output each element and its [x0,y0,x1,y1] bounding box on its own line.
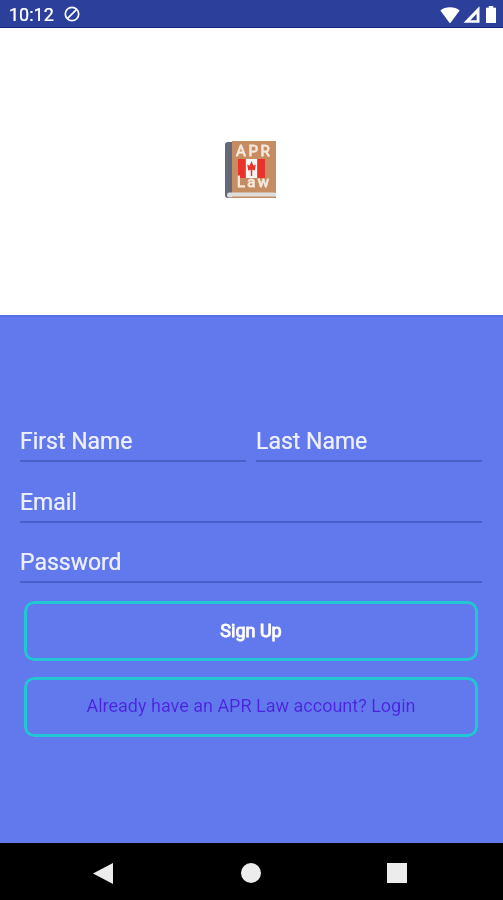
button[interactable]: Recent apps [373,849,421,897]
staticText: Law [237,173,272,191]
staticText: Password [20,549,122,576]
staticText: 10:12 [9,4,54,25]
staticText: Already have an APR Law account? Login [86,695,416,716]
button[interactable]: Back [79,849,127,897]
staticText: APR [236,142,273,160]
staticText: Last Name [256,428,368,455]
button[interactable]: Already have an APR Law account? Login [24,677,478,737]
button[interactable]: Sign Up [24,601,478,661]
staticText: Email [20,489,77,516]
staticText: Sign Up [220,620,282,641]
button[interactable]: Home [227,849,275,897]
staticText: First Name [20,428,133,455]
